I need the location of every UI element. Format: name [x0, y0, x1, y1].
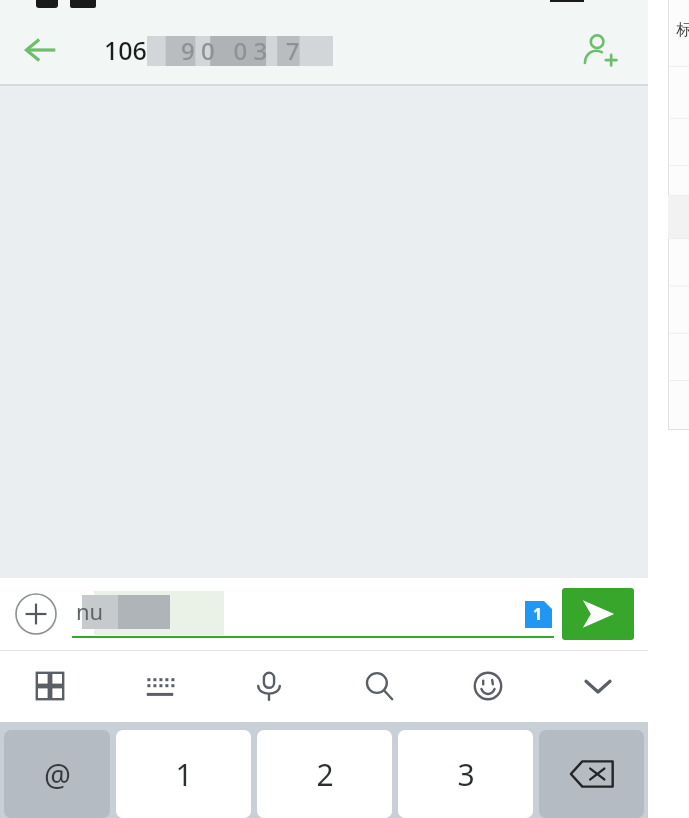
staticText: 9 0 0 3 7: [181, 34, 300, 67]
button[interactable]: 2: [257, 730, 392, 818]
button[interactable]: Voice input: [237, 654, 301, 718]
button[interactable]: Apps: [18, 654, 82, 718]
staticText: 1: [175, 754, 193, 795]
staticText: 标: [676, 20, 689, 40]
button[interactable]: 1: [116, 730, 251, 818]
button[interactable]: Back: [12, 22, 68, 78]
staticText: @: [44, 754, 71, 795]
button[interactable]: Hide keyboard: [566, 654, 630, 718]
button[interactable]: Attach: [8, 586, 64, 642]
button[interactable]: Backspace: [539, 730, 644, 818]
button[interactable]: Add contact: [572, 22, 628, 78]
button[interactable]: Keyboard: [128, 654, 192, 718]
button[interactable]: 3: [398, 730, 533, 818]
staticText: 2: [316, 754, 334, 795]
button[interactable]: Search: [347, 654, 411, 718]
button[interactable]: nu: [70, 585, 560, 643]
staticText: 106: [104, 33, 147, 67]
button[interactable]: SIM 1: [521, 597, 555, 631]
button[interactable]: Emoji: [456, 654, 520, 718]
button[interactable]: Send: [562, 588, 634, 640]
button[interactable]: 标: [668, 0, 689, 430]
staticText: nu: [76, 596, 104, 626]
button[interactable]: @: [4, 730, 110, 818]
staticText: 1: [533, 603, 543, 625]
staticText: 3: [457, 754, 475, 795]
